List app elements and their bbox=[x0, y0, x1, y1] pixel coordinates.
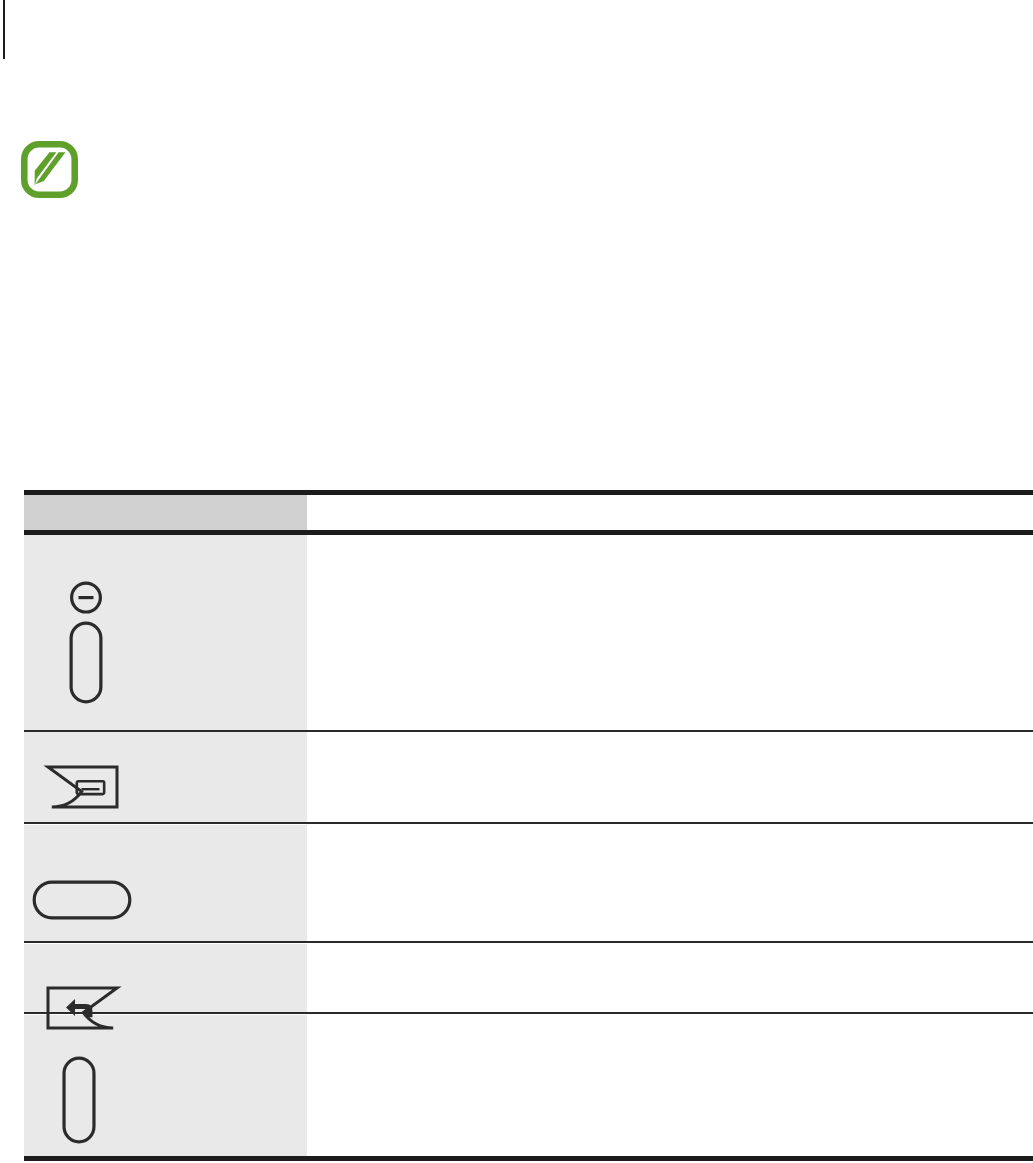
button[interactable]: Power key bbox=[62, 1055, 96, 1145]
button[interactable]: Back key bbox=[48, 988, 120, 1031]
button[interactable]: Recents key bbox=[48, 767, 120, 810]
other: Note bbox=[21, 141, 78, 198]
button[interactable]: Home key bbox=[31, 879, 133, 921]
button[interactable]: Volume key bbox=[62, 580, 110, 705]
